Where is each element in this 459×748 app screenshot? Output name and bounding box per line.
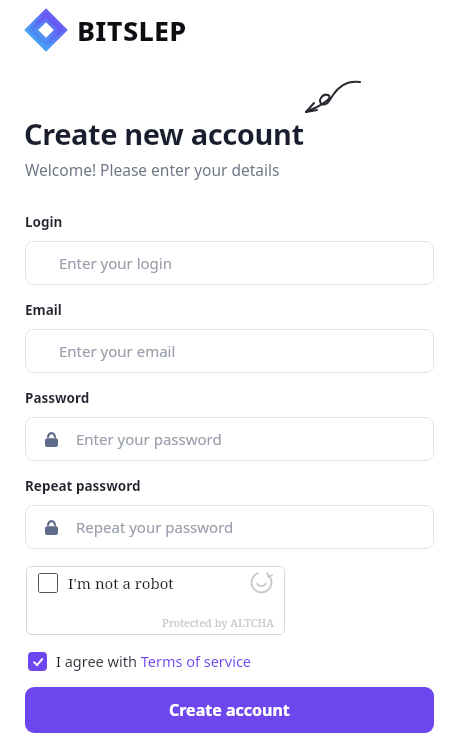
staticText: Enter your login [59, 253, 172, 273]
button[interactable]: BITSLEP [25, 9, 187, 51]
staticText: Welcome! Please enter your details [25, 159, 280, 180]
staticText: Enter your email [59, 341, 176, 361]
button[interactable]: Enter your login [25, 241, 434, 285]
staticText: I'm not a robot [68, 573, 174, 593]
button[interactable]: I'm not a robot [26, 566, 285, 635]
button[interactable]: Create account [25, 687, 434, 733]
staticText: Protected by ALTCHA [162, 615, 274, 630]
staticText: BITSLEP [77, 12, 187, 49]
staticText: Enter your password [76, 429, 222, 449]
button[interactable]: Repeat your password [25, 505, 434, 549]
staticText: Repeat your password [76, 517, 234, 537]
staticText: Email [25, 301, 62, 319]
button[interactable]: Enter your password [25, 417, 434, 461]
staticText: Repeat password [25, 477, 141, 495]
staticText: I agree with Terms of service [56, 651, 252, 671]
staticText: Password [25, 389, 90, 407]
button[interactable]: Enter your email [25, 329, 434, 373]
staticText: Login [25, 213, 63, 231]
button[interactable]: I agree with Terms of service [28, 651, 252, 671]
staticText: Create new account [24, 114, 304, 153]
staticText: Create account [169, 699, 290, 721]
